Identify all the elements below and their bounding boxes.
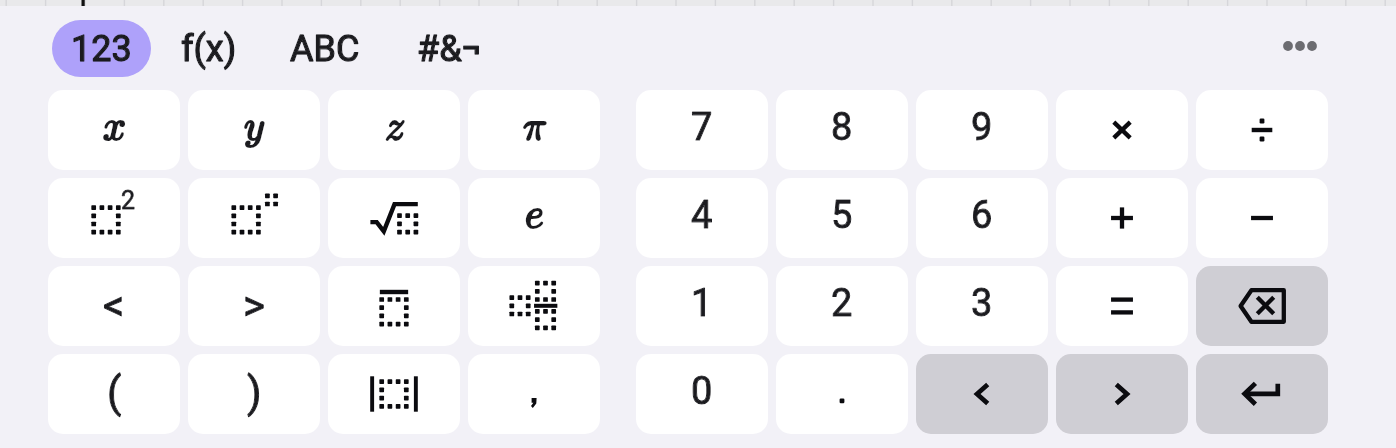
button[interactable]: Divide: [1196, 90, 1328, 170]
button[interactable]: Move cursor right: [1056, 354, 1188, 434]
staticText: 0: [691, 369, 713, 414]
button[interactable]: Enter: [1196, 354, 1328, 434]
staticText: (: [107, 368, 122, 417]
staticText: 3: [971, 281, 993, 326]
staticText: 8: [831, 105, 853, 150]
button[interactable]: less than: [48, 266, 180, 346]
button[interactable]: Backspace: [1196, 266, 1328, 346]
button[interactable]: 2: [776, 266, 908, 346]
staticText: 4: [691, 193, 713, 238]
button[interactable]: pi: [468, 90, 600, 170]
staticText: 6: [971, 193, 993, 238]
button[interactable]: 6: [916, 178, 1048, 258]
staticText: (: [107, 368, 122, 417]
staticText: <: [103, 281, 125, 330]
button[interactable]: Multiply: [1056, 90, 1188, 170]
staticText: 𝑥: [103, 107, 126, 147]
staticText: f(x): [181, 28, 237, 70]
button[interactable]: 8: [776, 90, 908, 170]
staticText: 𝜋: [523, 107, 546, 147]
staticText: ABC: [290, 28, 360, 70]
button[interactable]: right parenthesis: [188, 354, 320, 434]
staticText: 2: [831, 281, 853, 326]
staticText: 4: [691, 193, 713, 238]
staticText: 7: [691, 105, 713, 150]
button[interactable]: greater than: [188, 266, 320, 346]
button[interactable]: 3: [916, 266, 1048, 346]
button[interactable]: x: [48, 90, 180, 170]
staticText: 2: [831, 281, 853, 326]
button[interactable]: ABC: [267, 20, 383, 77]
button[interactable]: y: [188, 90, 320, 170]
button[interactable]: Absolute value: [328, 354, 460, 434]
button[interactable]: left parenthesis: [48, 354, 180, 434]
staticText: 3: [971, 281, 993, 326]
button[interactable]: Plus: [1056, 178, 1188, 258]
button[interactable]: 9: [916, 90, 1048, 170]
staticText: 𝑒: [525, 195, 544, 235]
staticText: >: [243, 281, 265, 330]
button[interactable]: #&¬: [396, 20, 502, 77]
button[interactable]: decimal point: [776, 354, 908, 434]
staticText: 1: [691, 281, 713, 326]
button[interactable]: 123: [52, 20, 151, 77]
button[interactable]: Repeating decimal: [328, 266, 460, 346]
staticText: 𝑒: [525, 195, 544, 235]
staticText: 123: [71, 28, 132, 70]
button[interactable]: Move cursor left: [916, 354, 1048, 434]
staticText: ABC: [290, 28, 360, 70]
button[interactable]: f(x): [165, 20, 253, 77]
staticText: 5: [831, 193, 853, 238]
staticText: 5: [831, 193, 853, 238]
staticText: 𝑥: [103, 107, 126, 147]
staticText: 𝑦: [244, 107, 264, 147]
button[interactable]: Minus: [1196, 178, 1328, 258]
button[interactable]: 0: [636, 354, 768, 434]
button[interactable]: More options: [1272, 18, 1328, 74]
button[interactable]: 7: [636, 90, 768, 170]
button[interactable]: 4: [636, 178, 768, 258]
staticText: f(x): [181, 28, 237, 70]
button[interactable]: Mixed fraction: [468, 266, 600, 346]
staticText: 7: [691, 105, 713, 150]
staticText: 𝜋: [523, 107, 546, 147]
staticText: <: [103, 281, 125, 330]
button[interactable]: comma: [468, 354, 600, 434]
staticText: #&¬: [417, 28, 482, 70]
staticText: 9: [971, 105, 993, 150]
button[interactable]: Square: [48, 178, 180, 258]
staticText: 6: [971, 193, 993, 238]
staticText: 𝑧: [385, 107, 404, 147]
button[interactable]: z: [328, 90, 460, 170]
button[interactable]: Power: [188, 178, 320, 258]
button[interactable]: Equals: [1056, 266, 1188, 346]
staticText: #&¬: [417, 28, 482, 70]
staticText: >: [243, 281, 265, 330]
staticText: ): [247, 368, 262, 417]
staticText: 1: [691, 281, 713, 326]
staticText: 𝑦: [244, 107, 264, 147]
button[interactable]: 5: [776, 178, 908, 258]
staticText: 123: [71, 28, 132, 70]
staticText: 𝑧: [385, 107, 404, 147]
button[interactable]: 1: [636, 266, 768, 346]
staticText: 2: [121, 186, 136, 215]
button[interactable]: Square root: [328, 178, 460, 258]
staticText: ): [247, 368, 262, 417]
button[interactable]: e: [468, 178, 600, 258]
staticText: 2: [121, 186, 136, 215]
staticText: 8: [831, 105, 853, 150]
staticText: 9: [971, 105, 993, 150]
staticText: 0: [691, 369, 713, 414]
